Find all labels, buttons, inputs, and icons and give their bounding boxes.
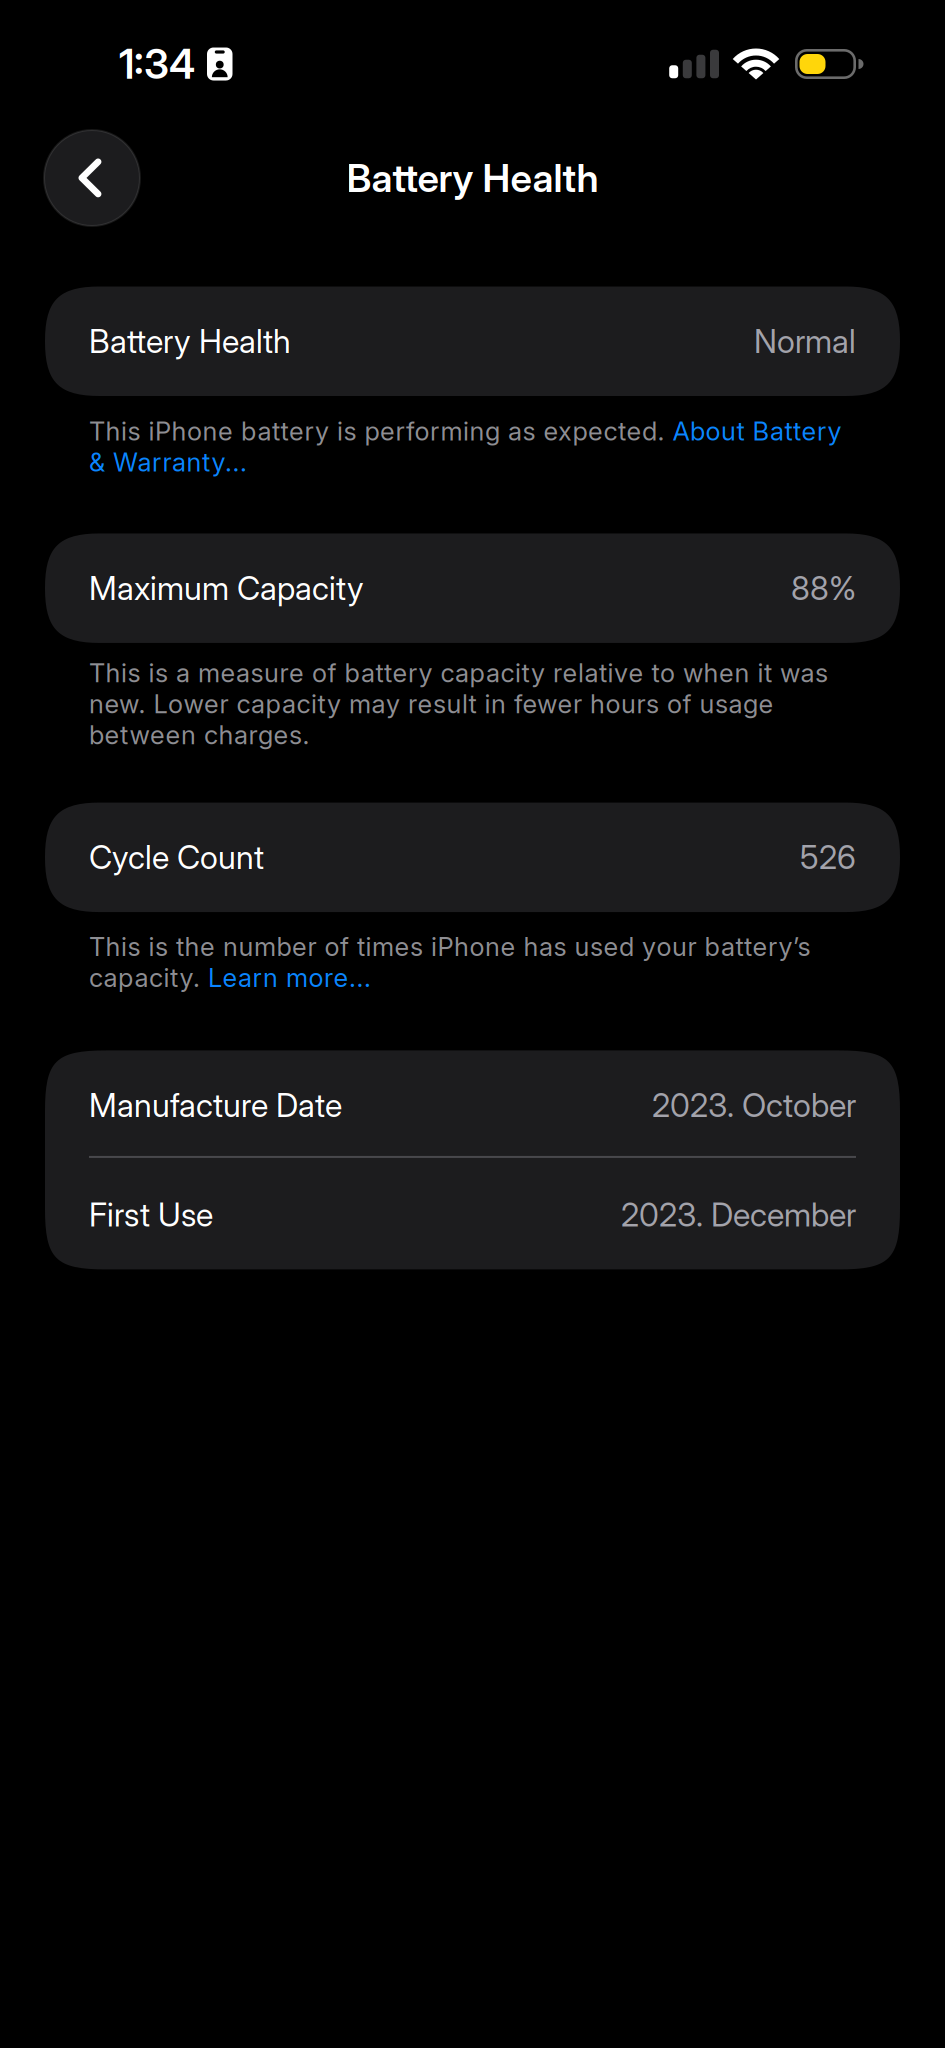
staticText: Battery Health <box>346 155 598 201</box>
staticText: 1:34 <box>119 39 195 89</box>
staticText: Cycle Count <box>89 838 264 877</box>
staticText: This iPhone battery is performing as exp… <box>89 416 841 478</box>
button[interactable]: Cycle Count <box>45 803 900 912</box>
staticText: This is the number of times iPhone has u… <box>89 931 810 993</box>
staticText: 2023. December <box>621 1195 856 1234</box>
button[interactable]: First Use <box>45 1160 900 1269</box>
staticText: Normal <box>754 322 856 361</box>
staticText: This is a measure of battery capacity re… <box>89 658 828 750</box>
staticText: First Use <box>89 1195 213 1234</box>
button[interactable]: Battery Health <box>45 286 900 396</box>
staticText: 526 <box>800 838 856 877</box>
staticText: Battery Health <box>89 322 291 361</box>
button[interactable]: Manufacture Date <box>45 1050 900 1160</box>
staticText: Maximum Capacity <box>89 569 364 608</box>
staticText: Manufacture Date <box>89 1086 342 1125</box>
button[interactable]: Back <box>44 130 140 226</box>
staticText: 2023. October <box>652 1086 856 1125</box>
staticText: 88% <box>791 569 856 608</box>
button[interactable]: Maximum Capacity <box>45 533 900 643</box>
